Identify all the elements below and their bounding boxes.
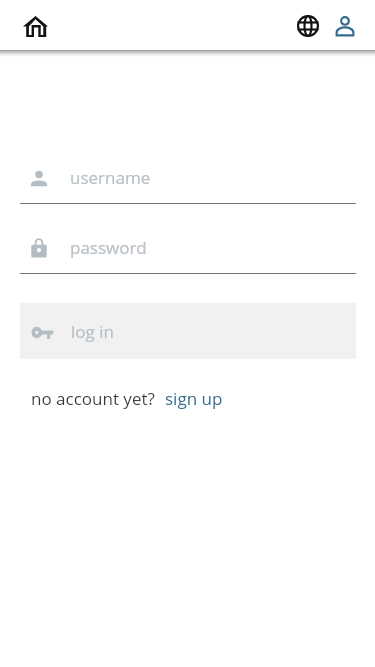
button[interactable]: Home — [11, 0, 59, 52]
staticText: username — [70, 166, 151, 189]
staticText: log in — [71, 320, 115, 343]
staticText: sign up — [165, 387, 223, 410]
button[interactable]: log in — [20, 303, 356, 359]
staticText: no account yet? — [31, 387, 155, 410]
button[interactable]: sign up — [165, 387, 223, 410]
staticText: password — [70, 236, 147, 259]
button[interactable]: Account — [323, 0, 367, 52]
button[interactable]: Change language — [285, 0, 330, 52]
